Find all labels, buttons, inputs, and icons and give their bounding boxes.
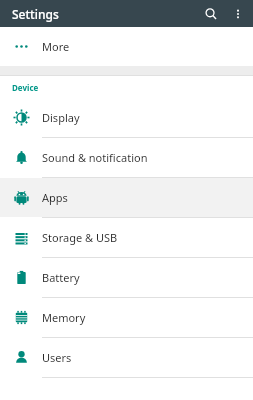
button[interactable]: More [0, 27, 253, 66]
button[interactable]: More options [227, 3, 249, 25]
staticText: Apps [42, 190, 68, 205]
staticText: Device [12, 82, 39, 93]
button[interactable]: Search [200, 3, 222, 25]
staticText: More [42, 39, 70, 54]
staticText: Storage & USB [42, 230, 118, 245]
staticText: Display [42, 110, 80, 125]
staticText: Users [42, 350, 72, 365]
button[interactable]: Users [0, 338, 253, 377]
staticText: Battery [42, 270, 80, 285]
button[interactable]: Storage & USB [0, 218, 253, 257]
staticText: Memory [42, 310, 86, 325]
button[interactable]: Apps [0, 178, 253, 217]
button[interactable]: Battery [0, 258, 253, 297]
button[interactable]: Display [0, 98, 253, 137]
staticText: Sound & notification [42, 150, 148, 165]
staticText: Settings [12, 6, 59, 22]
button[interactable]: Memory [0, 298, 253, 337]
button[interactable]: Sound & notification [0, 138, 253, 177]
